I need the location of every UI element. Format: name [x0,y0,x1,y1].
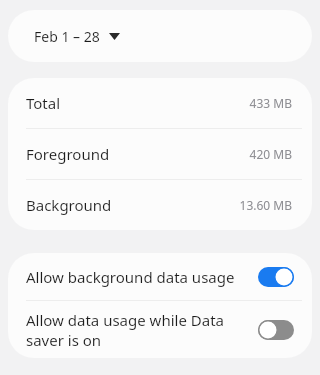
staticText: Feb 1 – 28 [34,27,100,46]
button[interactable]: Feb 1 – 28 [8,10,312,62]
staticText: Foreground [26,144,110,164]
button[interactable]: Allow data usage while Data saver is on [8,301,312,358]
staticText: Allow data usage while Data saver is on [26,310,246,350]
staticText: Allow background data usage [26,267,246,287]
button[interactable]: Total [8,78,312,128]
staticText: Total [26,93,61,113]
staticText: Background [26,195,112,215]
button[interactable]: Foreground [8,129,312,179]
staticText: 13.60 MB [239,197,292,213]
button[interactable]: Allow background data usage [8,253,312,300]
staticText: 420 MB [249,146,292,162]
staticText: 433 MB [249,95,292,111]
other: Change date range [109,33,120,40]
button[interactable]: Background [8,180,312,230]
